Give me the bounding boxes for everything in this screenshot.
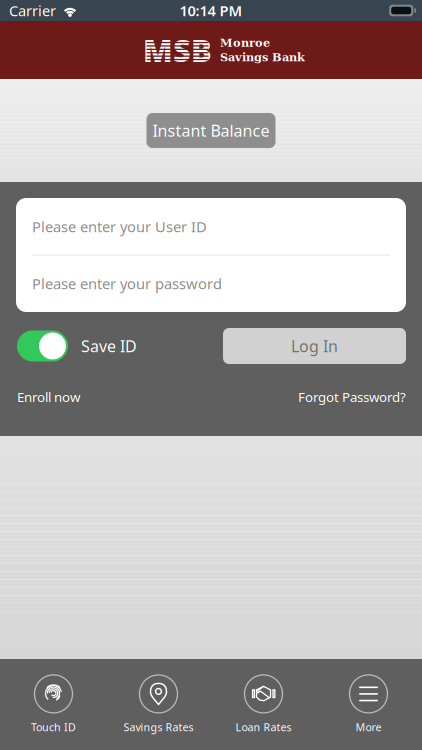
staticText: Savings Rates	[123, 720, 193, 734]
staticText: More	[355, 720, 381, 734]
staticText: Please enter your User ID	[32, 217, 207, 236]
button[interactable]: Loan Rates	[211, 659, 316, 750]
staticText: MSB	[143, 30, 212, 70]
button[interactable]: Forgot Password?	[298, 388, 406, 406]
button[interactable]: Savings Rates	[106, 659, 211, 750]
staticText: Instant Balance	[152, 120, 269, 141]
button[interactable]: Log In	[223, 328, 406, 364]
staticText: Please enter your password	[32, 274, 222, 293]
button[interactable]: Save ID	[17, 330, 137, 361]
button[interactable]: Enroll now	[17, 388, 80, 406]
staticText: Carrier	[9, 1, 56, 20]
staticText: Touch ID	[31, 720, 76, 734]
staticText: Log In	[291, 335, 338, 357]
button[interactable]: Instant Balance	[146, 113, 275, 148]
button[interactable]: Touch ID	[1, 659, 106, 750]
staticText: Loan Rates	[235, 720, 291, 734]
staticText: Enroll now	[17, 388, 80, 406]
button[interactable]: More	[316, 659, 421, 750]
staticText: Monroe	[220, 36, 270, 49]
staticText: Forgot Password?	[298, 388, 406, 406]
staticText: 10:14 PM	[179, 1, 242, 20]
staticText: Save ID	[81, 335, 137, 357]
staticText: Savings Bank	[220, 50, 305, 64]
